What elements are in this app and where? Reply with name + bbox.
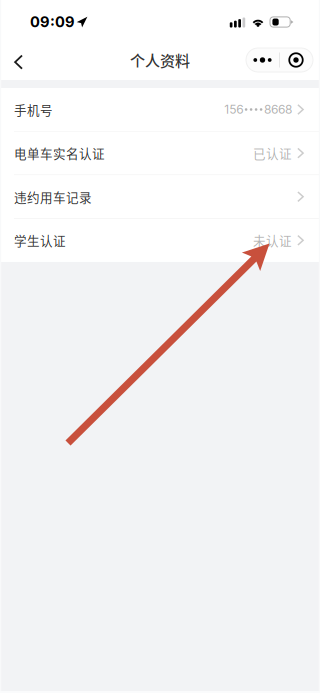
staticText: 已认证	[253, 144, 292, 162]
button[interactable]: 手机号	[0, 88, 320, 131]
staticText: 未认证	[253, 231, 292, 249]
button[interactable]: Close	[279, 48, 313, 72]
button[interactable]: Back	[0, 40, 44, 80]
staticText: 手机号	[14, 100, 53, 118]
button[interactable]: More	[246, 48, 279, 72]
button[interactable]: 违约用车记录	[0, 175, 320, 218]
staticText: 156	[224, 102, 243, 117]
button[interactable]: 学生认证	[0, 219, 320, 262]
staticText: 个人资料	[130, 49, 190, 71]
staticText: 8668	[264, 102, 292, 117]
staticText: 违约用车记录	[14, 188, 92, 206]
button[interactable]: 电单车实名认证	[0, 132, 320, 175]
staticText: 09:09	[30, 13, 75, 31]
staticText: 学生认证	[14, 231, 66, 249]
staticText: 电单车实名认证	[14, 144, 105, 162]
